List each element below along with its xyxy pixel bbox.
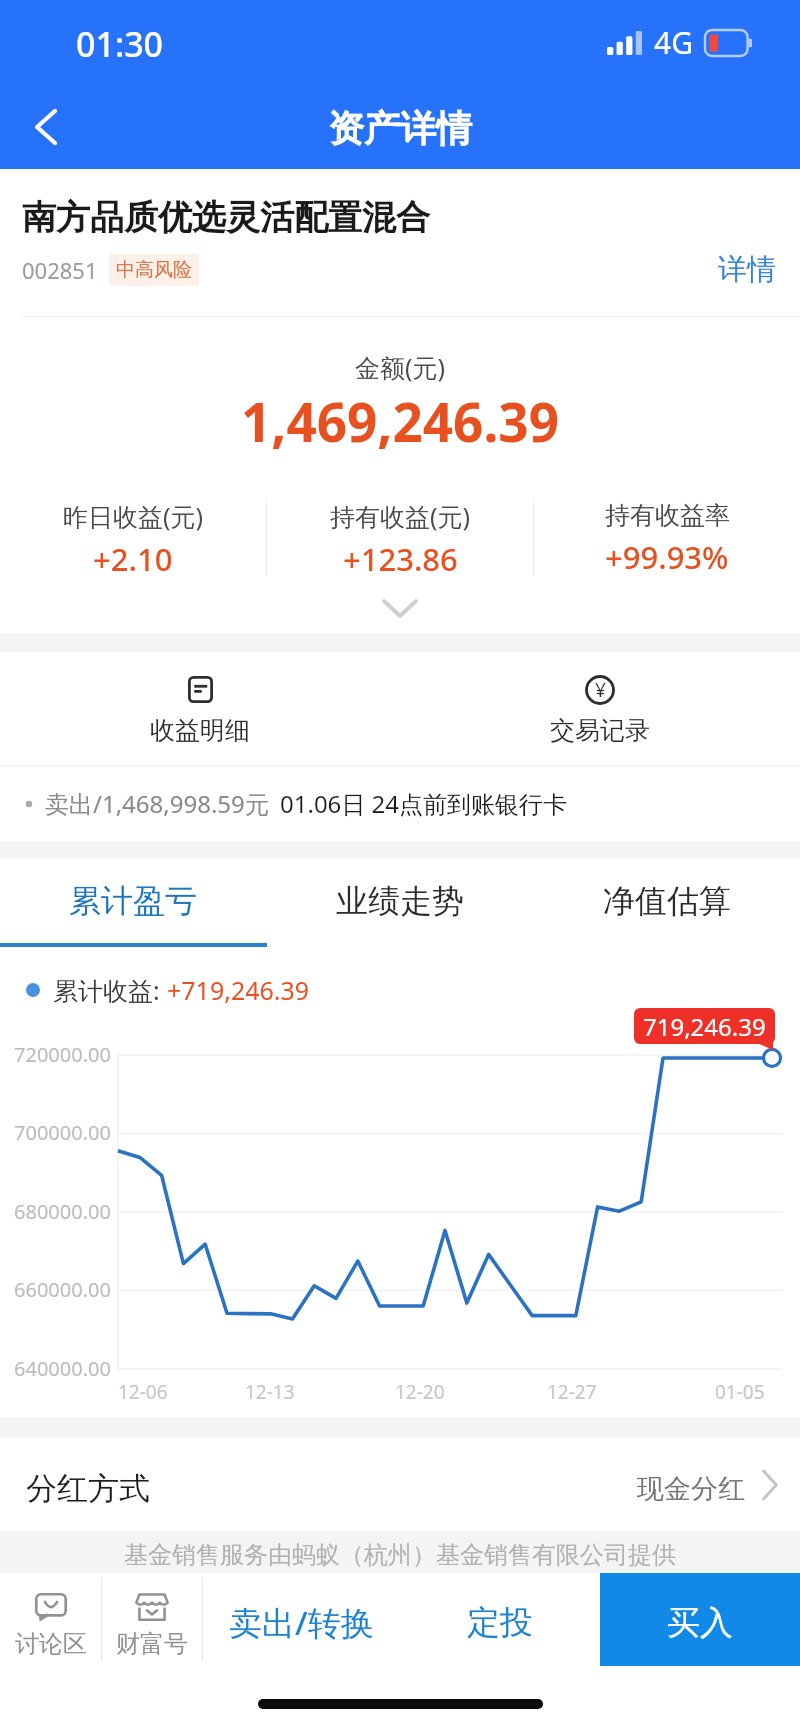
staticText: 昨日收益(元): [63, 499, 204, 533]
staticText: 1,469,246.39: [241, 385, 559, 457]
staticText: 详情: [718, 251, 776, 288]
staticText: 净值估算: [603, 881, 731, 921]
staticText: 640000.00: [14, 1355, 111, 1382]
staticText: 持有收益(元): [330, 499, 471, 533]
staticText: +99.93%: [605, 536, 729, 578]
staticText: 交易记录: [550, 715, 650, 746]
staticText: +2.10: [93, 538, 173, 580]
button[interactable]: 收益明细: [0, 652, 400, 765]
button[interactable]: ¥: [400, 652, 800, 765]
staticText: 买入: [667, 1602, 733, 1644]
staticText: 01-05: [715, 1379, 765, 1405]
staticText: 卖出/1,468,998.59元: [45, 787, 269, 820]
staticText: 12-13: [245, 1379, 295, 1405]
staticText: 南方品质优选灵活配置混合: [22, 196, 430, 239]
staticText: 分红方式: [26, 1469, 150, 1508]
staticText: 12-20: [395, 1379, 445, 1405]
staticText: ¥: [595, 677, 606, 703]
staticText: 卖出/转换: [229, 1600, 374, 1645]
staticText: 累计盈亏: [69, 881, 197, 921]
button[interactable]: 净值估算: [533, 859, 800, 943]
button[interactable]: Expand: [0, 583, 800, 633]
staticText: 660000.00: [14, 1276, 111, 1303]
button[interactable]: 讨论区: [0, 1573, 101, 1666]
staticText: 定投: [467, 1602, 533, 1644]
staticText: 现金分红: [637, 1472, 745, 1506]
staticText: 讨论区: [15, 1629, 87, 1659]
button[interactable]: 卖出/转换: [203, 1573, 400, 1666]
staticText: 金额(元): [355, 350, 446, 384]
staticText: 4G: [654, 22, 693, 63]
staticText: +123.86: [343, 538, 458, 580]
staticText: +719,246.39: [167, 973, 310, 1007]
staticText: 12-27: [547, 1379, 597, 1405]
staticText: 01:30: [76, 21, 164, 67]
staticText: 累计收益:: [53, 973, 167, 1007]
staticText: 720000.00: [14, 1041, 111, 1068]
button[interactable]: 定投: [400, 1573, 600, 1666]
staticText: 719,246.39: [643, 1010, 766, 1043]
staticText: 收益明细: [150, 715, 250, 746]
staticText: 业绩走势: [336, 881, 464, 921]
button[interactable]: 买入: [600, 1573, 800, 1666]
button[interactable]: Back: [19, 100, 73, 154]
staticText: 基金销售服务由蚂蚁（杭州）基金销售有限公司提供: [124, 1540, 676, 1570]
button[interactable]: 累计盈亏: [0, 859, 266, 943]
button[interactable]: 业绩走势: [266, 859, 533, 943]
staticText: 002851: [22, 255, 98, 285]
staticText: 资产详情: [328, 106, 472, 151]
button[interactable]: 详情: [716, 247, 778, 292]
staticText: 680000.00: [14, 1198, 111, 1225]
staticText: 财富号: [116, 1629, 188, 1659]
button[interactable]: 分红方式: [0, 1438, 800, 1531]
staticText: 700000.00: [14, 1119, 111, 1146]
button[interactable]: 财富号: [102, 1573, 202, 1666]
staticText: 中高风险: [116, 258, 192, 282]
staticText: 持有收益率: [605, 500, 730, 531]
staticText: 01.06日 24点前到账银行卡: [280, 787, 568, 820]
staticText: 12-06: [118, 1379, 168, 1405]
